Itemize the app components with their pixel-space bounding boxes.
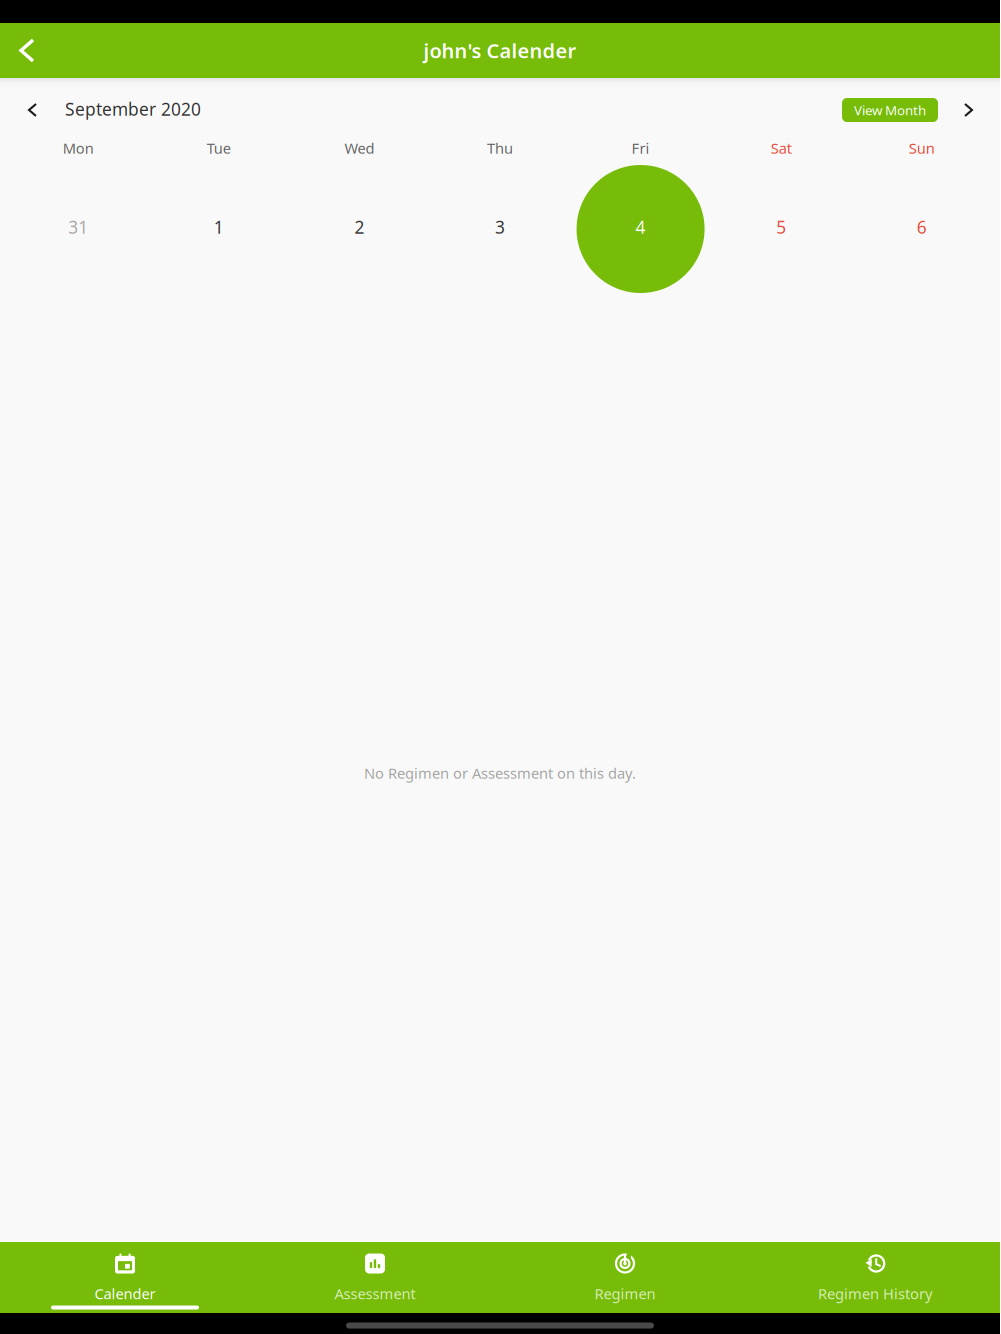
staticText: 31 — [68, 215, 88, 238]
button[interactable]: View Month — [842, 83, 943, 122]
button[interactable]: Mon — [8, 140, 149, 293]
staticText: 1 — [214, 215, 224, 238]
button[interactable]: Next month — [943, 78, 1000, 127]
button[interactable]: Sat — [711, 140, 851, 293]
staticText: Calender — [94, 1284, 155, 1303]
button[interactable]: Assessment — [250, 1242, 500, 1312]
staticText: Tue — [207, 138, 231, 158]
staticText: Sun — [909, 138, 935, 158]
button[interactable]: Regimen — [500, 1242, 750, 1312]
staticText: Regimen History — [818, 1284, 932, 1303]
button[interactable]: Calender — [0, 1242, 250, 1312]
staticText: Regimen — [594, 1284, 655, 1303]
button[interactable]: Tue — [149, 140, 289, 293]
staticText: 6 — [917, 215, 927, 238]
staticText: john's Calender — [423, 37, 576, 64]
button[interactable]: Previous month — [0, 78, 58, 127]
button[interactable]: Fri — [570, 140, 711, 293]
staticText: Wed — [344, 138, 374, 158]
button[interactable]: Thu — [430, 140, 570, 293]
staticText: 5 — [776, 215, 786, 238]
staticText: Mon — [63, 138, 94, 158]
staticText: September 2020 — [65, 97, 201, 120]
staticText: Assessment — [334, 1284, 415, 1303]
staticText: 3 — [495, 215, 505, 238]
staticText: No Regimen or Assessment on this day. — [364, 763, 636, 783]
button[interactable]: Back — [0, 23, 50, 78]
button[interactable]: Sun — [851, 140, 992, 293]
staticText: Sat — [771, 138, 792, 158]
staticText: 2 — [354, 215, 364, 238]
staticText: Fri — [632, 138, 650, 158]
button[interactable]: Regimen History — [750, 1242, 1000, 1312]
staticText: 4 — [636, 215, 646, 238]
staticText: View Month — [854, 101, 926, 119]
button[interactable]: Wed — [289, 140, 430, 293]
staticText: Thu — [487, 138, 513, 158]
